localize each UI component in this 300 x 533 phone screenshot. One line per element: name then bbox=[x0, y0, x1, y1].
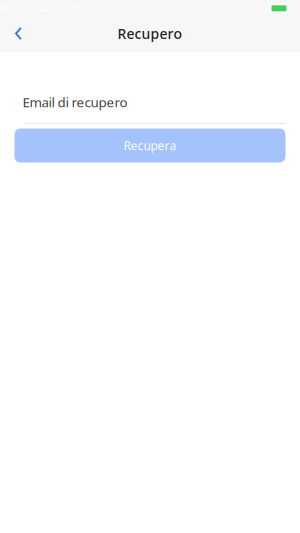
staticText: Email di recupero bbox=[22, 93, 127, 111]
staticText: Recupera bbox=[123, 137, 176, 154]
button[interactable]: Back bbox=[0, 15, 37, 52]
button[interactable]: Email di recupero bbox=[0, 95, 300, 124]
staticText: Recupero bbox=[117, 24, 182, 43]
button[interactable]: Recupera bbox=[14, 128, 285, 162]
